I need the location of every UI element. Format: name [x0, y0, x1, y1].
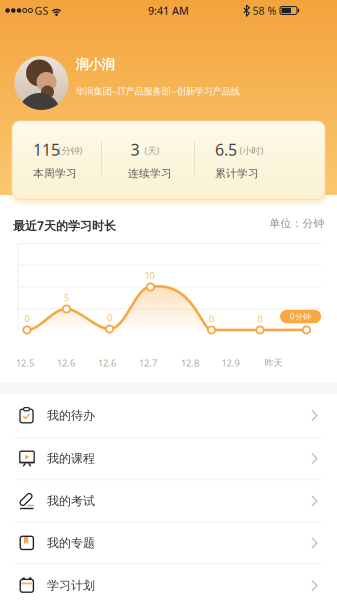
staticText: 本周学习 [33, 167, 77, 180]
staticText: 单位：分钟 [269, 217, 324, 230]
staticText: 我的考试 [47, 494, 95, 508]
staticText: 0 [107, 311, 112, 324]
button[interactable]: 润小润 [0, 0, 337, 120]
staticText: 华润集团--IT产品服务部--创新学习产品线 [75, 85, 239, 97]
staticText: 0 [24, 312, 29, 325]
staticText: 昨天 [264, 357, 282, 369]
button[interactable]: 我的课程 [0, 437, 337, 479]
staticText: 3 [130, 139, 139, 160]
staticText: 10 [144, 269, 154, 282]
staticText: 115 [33, 139, 60, 160]
staticText: 6.5 [215, 139, 237, 160]
staticText: 累计学习 [215, 167, 259, 180]
staticText: (天) [144, 144, 159, 157]
staticText: 最近7天的学习时长 [13, 217, 116, 233]
staticText: 我的待办 [47, 408, 95, 423]
staticText: 12.7 [139, 357, 157, 369]
staticText: (分钟) [58, 144, 82, 157]
staticText: 我的课程 [47, 451, 95, 466]
staticText: 学习计划 [47, 578, 95, 593]
staticText: 0分钟 [290, 311, 311, 322]
staticText: 12.8 [181, 357, 199, 369]
staticText: 我的专题 [47, 536, 95, 550]
staticText: 12.6 [98, 357, 116, 369]
staticText: 连续学习 [128, 167, 172, 180]
staticText: 12.6 [57, 357, 75, 369]
staticText: 润小润 [75, 56, 114, 73]
staticText: 0 [209, 313, 214, 325]
staticText: 12.9 [221, 357, 239, 369]
staticText: GS [34, 3, 48, 18]
button[interactable]: 我的考试 [0, 480, 337, 522]
button[interactable]: 我的专题 [0, 522, 337, 564]
staticText: 58 % [252, 3, 276, 18]
staticText: (小时) [239, 144, 263, 157]
staticText: 12.5 [16, 357, 34, 369]
button[interactable]: 学习计划 [0, 564, 337, 600]
staticText: 9:41 AM [148, 3, 189, 18]
staticText: 0 [257, 313, 262, 325]
button[interactable]: 我的待办 [0, 394, 337, 436]
staticText: 5 [64, 291, 69, 304]
